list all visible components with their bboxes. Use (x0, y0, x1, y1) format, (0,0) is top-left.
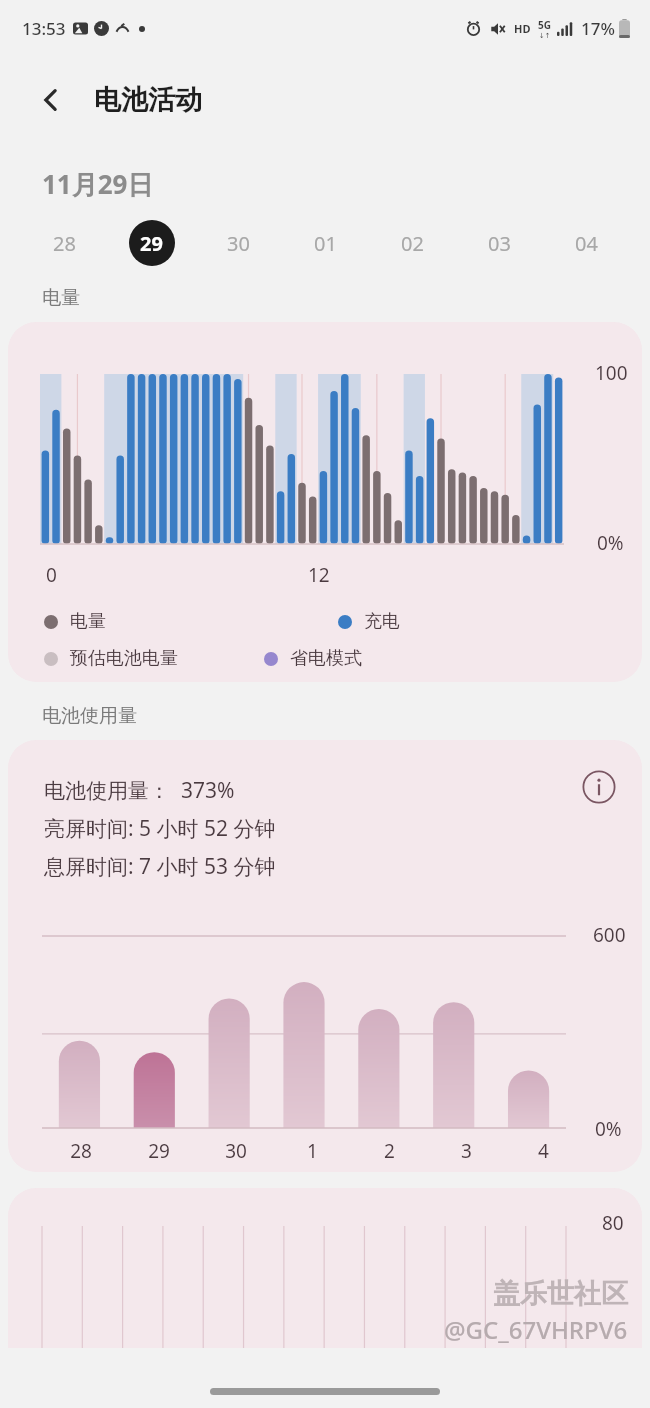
staticText: HD (514, 21, 531, 36)
staticText: 11月29日 (42, 166, 154, 202)
button[interactable]: 80 (8, 1188, 642, 1348)
staticText: 1 (307, 1138, 318, 1164)
staticText: 30 (225, 1138, 247, 1164)
staticText: @GC_67VHRPV6 (444, 1313, 628, 1346)
staticText: 0% (595, 1116, 622, 1142)
staticText: 3 (461, 1138, 472, 1164)
staticText: 5G (538, 18, 551, 32)
staticText: 息屏时间: 7 小时 53 分钟 (44, 852, 276, 881)
button[interactable]: 04 (543, 216, 630, 270)
staticText: 01 (314, 230, 337, 257)
button[interactable]: 29 (108, 216, 195, 270)
button[interactable]: 03 (456, 216, 543, 270)
staticText: 28 (70, 1138, 92, 1164)
staticText: 0 (46, 562, 57, 588)
staticText: 2 (384, 1138, 395, 1164)
staticText: 电池使用量 (42, 704, 137, 728)
staticText: 29 (148, 1138, 170, 1164)
staticText: 电量 (42, 286, 80, 310)
staticText: 电池活动 (94, 83, 202, 117)
staticText: 29 (140, 230, 163, 257)
staticText: 亮屏时间: 5 小时 52 分钟 (44, 814, 276, 843)
button[interactable]: 电池使用量： 373% (8, 740, 642, 1172)
button[interactable]: 01 (282, 216, 369, 270)
staticText: 充电 (364, 610, 400, 633)
button[interactable]: Back (28, 77, 74, 123)
staticText: 03 (488, 230, 511, 257)
staticText: 28 (53, 230, 76, 257)
staticText: 4 (538, 1138, 549, 1164)
staticText: 0% (597, 530, 624, 556)
staticText: 600 (593, 922, 626, 948)
button[interactable]: 28 (20, 216, 108, 270)
staticText: 13:53 (22, 17, 66, 40)
staticText: 17% (581, 17, 615, 40)
button[interactable]: 02 (369, 216, 456, 270)
staticText: 电量 (70, 610, 106, 633)
staticText: 12 (308, 562, 330, 588)
staticText: 100 (595, 360, 628, 386)
button[interactable]: 100 (8, 322, 642, 682)
staticText: 省电模式 (290, 647, 362, 670)
staticText: 04 (575, 230, 598, 257)
staticText: 02 (401, 230, 424, 257)
staticText: 盖乐世社区 (493, 1277, 628, 1311)
staticText: 电池使用量： 373% (44, 776, 235, 805)
staticText: 80 (602, 1210, 624, 1236)
staticText: ↓↑ (539, 32, 551, 40)
staticText: 预估电池电量 (70, 647, 178, 670)
staticText: 30 (227, 230, 250, 257)
button[interactable]: Information (574, 762, 624, 812)
button[interactable]: 30 (195, 216, 282, 270)
